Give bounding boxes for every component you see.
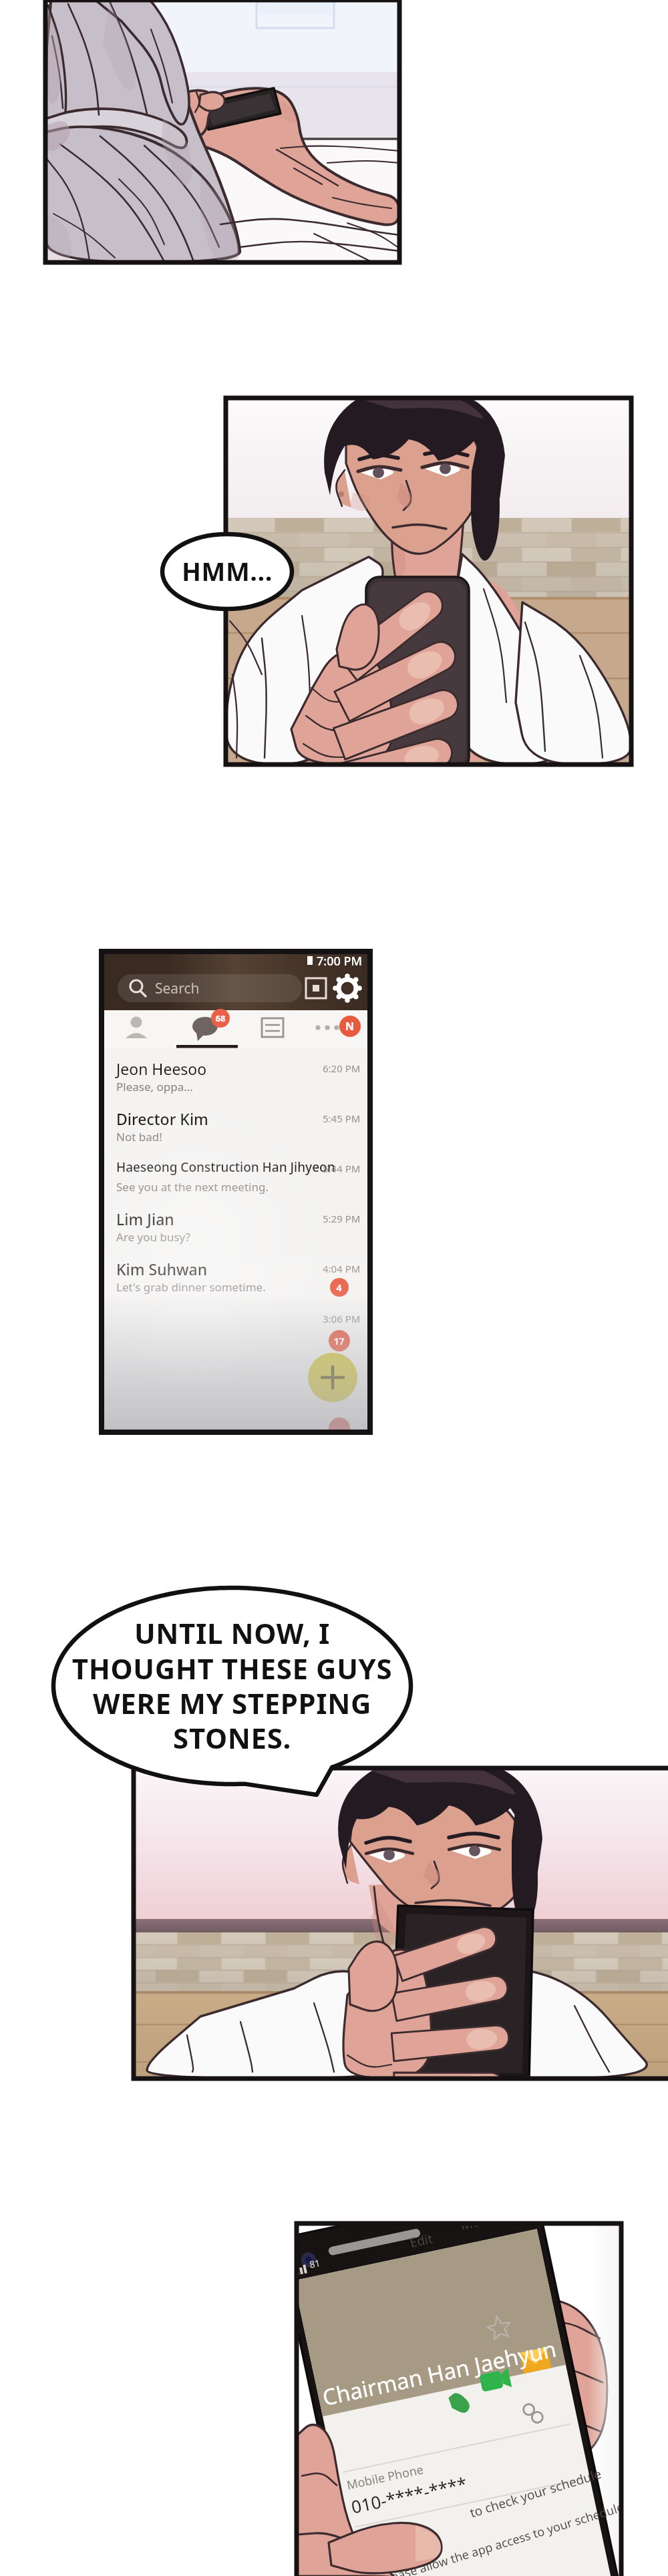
button[interactable]	[0, 0, 668, 2576]
